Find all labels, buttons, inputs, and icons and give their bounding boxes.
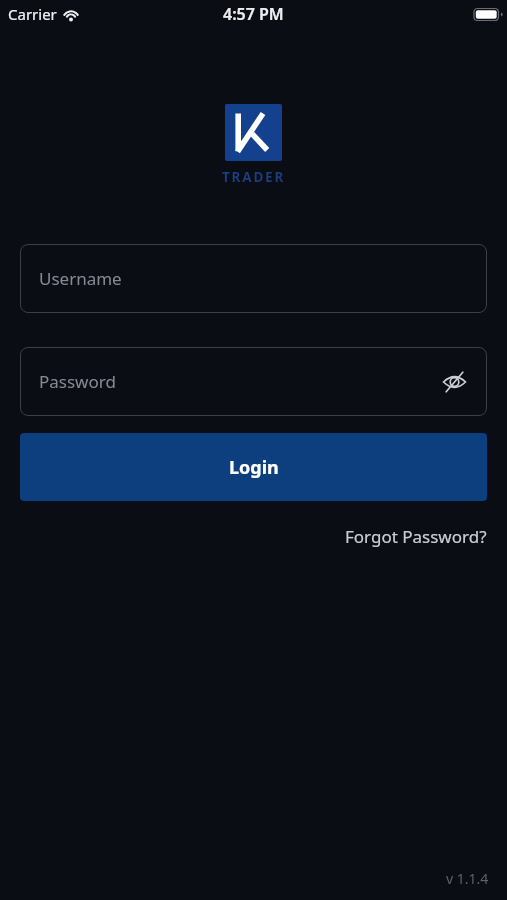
staticText: Password bbox=[39, 370, 116, 393]
button[interactable]: Forgot Password? bbox=[345, 525, 487, 548]
staticText: Forgot Password? bbox=[345, 525, 487, 548]
staticText: Username bbox=[39, 267, 122, 290]
button[interactable]: Username bbox=[20, 244, 487, 313]
staticText: v 1.1.4 bbox=[446, 869, 489, 888]
staticText: Carrier bbox=[8, 4, 57, 24]
button[interactable]: Password bbox=[20, 347, 487, 416]
button[interactable]: Login bbox=[20, 433, 487, 501]
staticText: 4:57 PM bbox=[223, 3, 284, 25]
staticText: TRADER bbox=[222, 168, 286, 186]
staticText: Login bbox=[229, 455, 279, 480]
